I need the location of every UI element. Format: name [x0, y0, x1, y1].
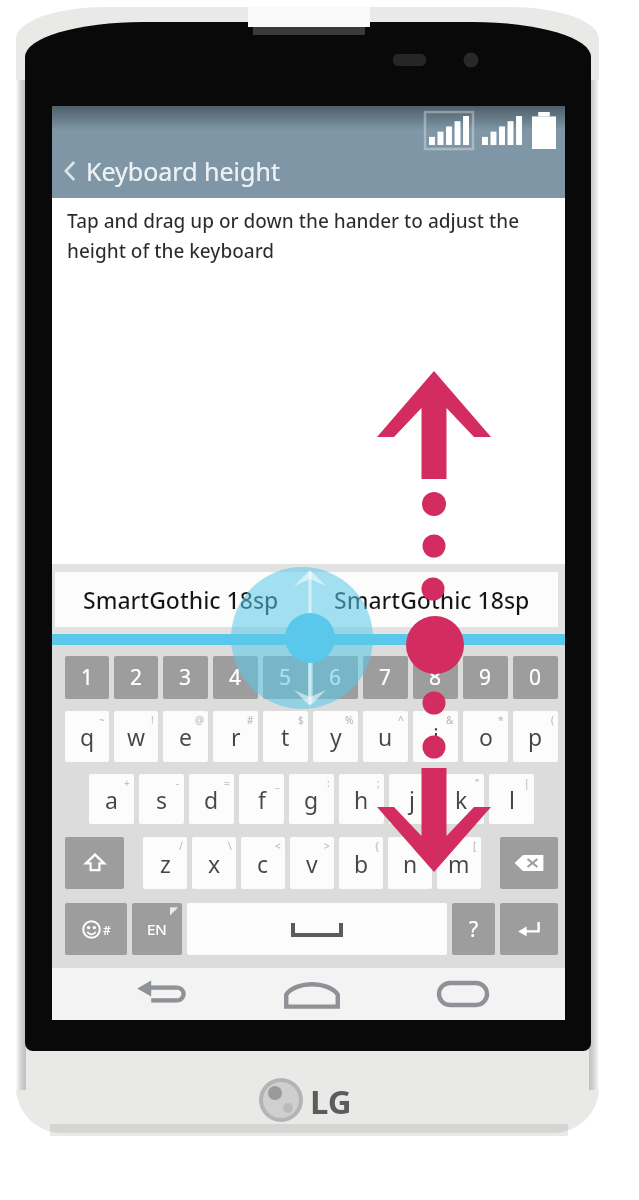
- button[interactable]: 6: [313, 656, 358, 699]
- button[interactable]: i: [413, 711, 458, 762]
- staticText: j: [409, 784, 415, 815]
- button[interactable]: w: [114, 711, 158, 762]
- staticText: 6: [329, 663, 342, 692]
- staticText: SmartGothic 18sp: [83, 584, 279, 615]
- staticText: -: [176, 776, 180, 790]
- staticText: h: [354, 784, 369, 815]
- staticText: >: [324, 839, 330, 853]
- button[interactable]: e: [163, 711, 208, 762]
- staticText: b: [354, 848, 369, 879]
- button[interactable]: j: [389, 774, 434, 824]
- staticText: 3: [179, 663, 192, 692]
- button[interactable]: d: [189, 774, 234, 824]
- button[interactable]: g: [289, 774, 334, 824]
- staticText: #: [103, 922, 111, 938]
- button[interactable]: q: [65, 711, 109, 762]
- button[interactable]: n: [388, 837, 432, 889]
- staticText: =: [224, 776, 230, 790]
- staticText: :: [327, 776, 330, 790]
- button[interactable]: Back: [124, 970, 200, 1018]
- button[interactable]: f: [239, 774, 284, 824]
- staticText: o: [479, 721, 493, 752]
- staticText: k: [455, 784, 468, 815]
- staticText: \: [228, 839, 232, 853]
- staticText: l: [509, 784, 515, 815]
- staticText: 9: [479, 663, 492, 692]
- button[interactable]: Recent apps: [425, 970, 501, 1018]
- button[interactable]: 0: [513, 656, 558, 699]
- staticText: x: [208, 848, 221, 879]
- staticText: %: [345, 713, 354, 727]
- staticText: 8: [429, 663, 442, 692]
- button[interactable]: b: [339, 837, 383, 889]
- button[interactable]: ?: [452, 903, 495, 955]
- button[interactable]: Space: [187, 903, 447, 955]
- button[interactable]: v: [290, 837, 334, 889]
- button[interactable]: 7: [363, 656, 408, 699]
- staticText: i: [433, 721, 439, 752]
- staticText: @: [195, 713, 204, 727]
- button[interactable]: t: [263, 711, 308, 762]
- button[interactable]: 3: [163, 656, 208, 699]
- staticText: <: [275, 839, 281, 853]
- button[interactable]: y: [313, 711, 358, 762]
- staticText: /: [179, 839, 183, 853]
- button[interactable]: 1: [65, 656, 109, 699]
- button[interactable]: EN: [132, 903, 182, 955]
- staticText: _: [275, 776, 280, 790]
- staticText: [: [473, 839, 477, 853]
- button[interactable]: x: [192, 837, 236, 889]
- staticText: 5: [279, 663, 292, 692]
- button[interactable]: SmartGothic 18sp: [306, 572, 558, 627]
- button[interactable]: k: [439, 774, 484, 824]
- staticText: |: [524, 776, 530, 790]
- staticText: LG: [310, 1079, 352, 1124]
- staticText: 1: [81, 663, 94, 692]
- button[interactable]: 4: [213, 656, 258, 699]
- button[interactable]: Emoji: [65, 903, 127, 955]
- button[interactable]: 9: [463, 656, 508, 699]
- staticText: ": [475, 776, 480, 790]
- staticText: {: [375, 839, 379, 853]
- staticText: $: [298, 713, 304, 727]
- button[interactable]: Keyboard height: [52, 143, 565, 198]
- button[interactable]: 5: [263, 656, 308, 699]
- staticText: w: [127, 721, 146, 752]
- staticText: &: [446, 713, 454, 727]
- staticText: a: [105, 784, 118, 815]
- button[interactable]: u: [363, 711, 408, 762]
- staticText: z: [160, 848, 171, 879]
- staticText: 4: [229, 663, 242, 692]
- staticText: ;: [377, 776, 380, 790]
- button[interactable]: c: [241, 837, 285, 889]
- button[interactable]: Enter: [500, 903, 558, 955]
- staticText: !: [151, 713, 154, 727]
- staticText: 0: [529, 663, 542, 692]
- button[interactable]: SmartGothic 18sp: [55, 572, 306, 627]
- button[interactable]: p: [513, 711, 558, 762]
- button[interactable]: h: [339, 774, 384, 824]
- staticText: #: [247, 713, 254, 727]
- button[interactable]: Shift: [65, 837, 124, 889]
- button[interactable]: s: [139, 774, 184, 824]
- staticText: ~: [99, 713, 105, 727]
- button[interactable]: o: [463, 711, 508, 762]
- button[interactable]: 2: [114, 656, 158, 699]
- staticText: EN: [147, 919, 167, 939]
- staticText: r: [231, 721, 241, 752]
- staticText: ◤: [170, 905, 178, 917]
- button[interactable]: a: [89, 774, 134, 824]
- staticText: *: [498, 713, 504, 727]
- button[interactable]: Home: [274, 970, 350, 1018]
- button[interactable]: r: [213, 711, 258, 762]
- button[interactable]: l: [489, 774, 534, 824]
- staticText: v: [306, 848, 318, 879]
- staticText: (: [551, 713, 554, 727]
- button[interactable]: z: [143, 837, 187, 889]
- button[interactable]: m: [437, 837, 481, 889]
- staticText: 2: [130, 663, 143, 692]
- button[interactable]: Delete: [500, 837, 558, 889]
- button[interactable]: 8: [413, 656, 458, 699]
